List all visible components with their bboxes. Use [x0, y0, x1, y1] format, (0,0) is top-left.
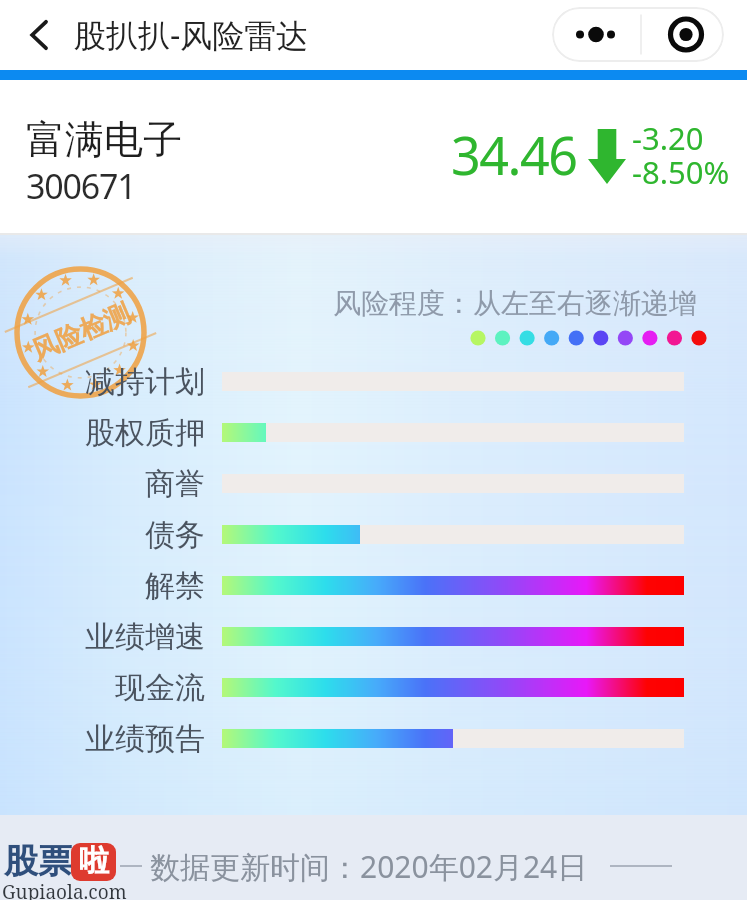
staticText: 减持计划: [0, 363, 205, 401]
button[interactable]: More options: [552, 7, 724, 62]
staticText: 风险检测: [27, 297, 135, 368]
staticText: -3.20: [632, 117, 704, 159]
staticText: -8.50%: [632, 151, 730, 193]
staticText: 债务: [0, 516, 205, 554]
staticText: 解禁: [0, 567, 205, 605]
staticText: 富满电子: [26, 115, 182, 164]
staticText: 股扒扒-风险雷达: [74, 13, 309, 57]
staticText: 数据更新时间：2020年02月24日: [150, 846, 588, 887]
staticText: 股权质押: [0, 414, 205, 452]
staticText: 股票: [4, 840, 72, 883]
staticText: 300671: [26, 163, 136, 209]
button[interactable]: Back: [14, 9, 66, 61]
staticText: 业绩预告: [0, 720, 205, 758]
staticText: Gupiaola.com: [2, 879, 127, 900]
staticText: 现金流: [0, 669, 205, 707]
staticText: 34.46: [451, 119, 577, 190]
staticText: 风险程度：从左至右逐渐递增: [333, 286, 697, 321]
staticText: 业绩增速: [0, 618, 205, 656]
staticText: 啦: [79, 843, 109, 880]
staticText: 商誉: [0, 465, 205, 503]
